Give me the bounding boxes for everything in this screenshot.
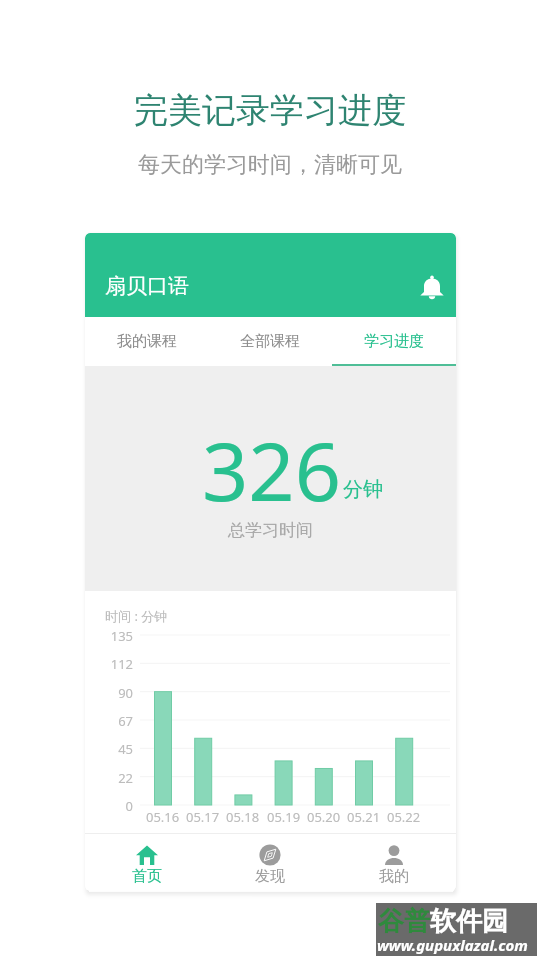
staticText: 05.20 <box>307 808 341 826</box>
staticText: 首页 <box>132 867 162 886</box>
button[interactable]: 发现 <box>208 833 332 891</box>
staticText: 每天的学习时间，清晰可见 <box>138 151 402 179</box>
staticText: 05.21 <box>347 808 381 826</box>
button[interactable]: Notifications <box>415 271 449 305</box>
staticText: 软件园 <box>430 905 508 938</box>
staticText: 学习进度 <box>364 332 424 351</box>
staticText: 112 <box>110 655 133 673</box>
staticText: 扇贝口语 <box>105 273 189 299</box>
button[interactable]: 我的课程 <box>85 317 208 366</box>
staticText: 谷普 <box>378 905 430 938</box>
button[interactable]: 首页 <box>85 833 208 891</box>
staticText: 发现 <box>255 867 285 886</box>
staticText: 90 <box>118 684 133 702</box>
staticText: 135 <box>110 627 133 645</box>
staticText: 05.19 <box>267 808 301 826</box>
staticText: 全部课程 <box>240 332 300 351</box>
staticText: 总学习时间 <box>228 520 313 541</box>
staticText: 05.16 <box>146 808 180 826</box>
staticText: 我的课程 <box>117 332 177 351</box>
staticText: 05.17 <box>186 808 220 826</box>
staticText: 分钟 <box>343 477 383 502</box>
staticText: 45 <box>118 740 133 758</box>
button[interactable]: 全部课程 <box>208 317 332 366</box>
staticText: 完美记录学习进度 <box>134 89 406 132</box>
staticText: 22 <box>118 769 133 787</box>
button[interactable]: 我的 <box>332 833 456 891</box>
staticText: 05.22 <box>387 808 421 826</box>
staticText: 时间 : 分钟 <box>105 607 168 625</box>
staticText: 326 <box>202 414 341 524</box>
staticText: 我的 <box>379 867 409 886</box>
staticText: 67 <box>118 712 133 730</box>
staticText: www.gupuxlazal.com <box>377 935 528 955</box>
staticText: 05.18 <box>226 808 260 826</box>
button[interactable]: 学习进度 <box>332 317 456 366</box>
staticText: 0 <box>125 797 133 815</box>
